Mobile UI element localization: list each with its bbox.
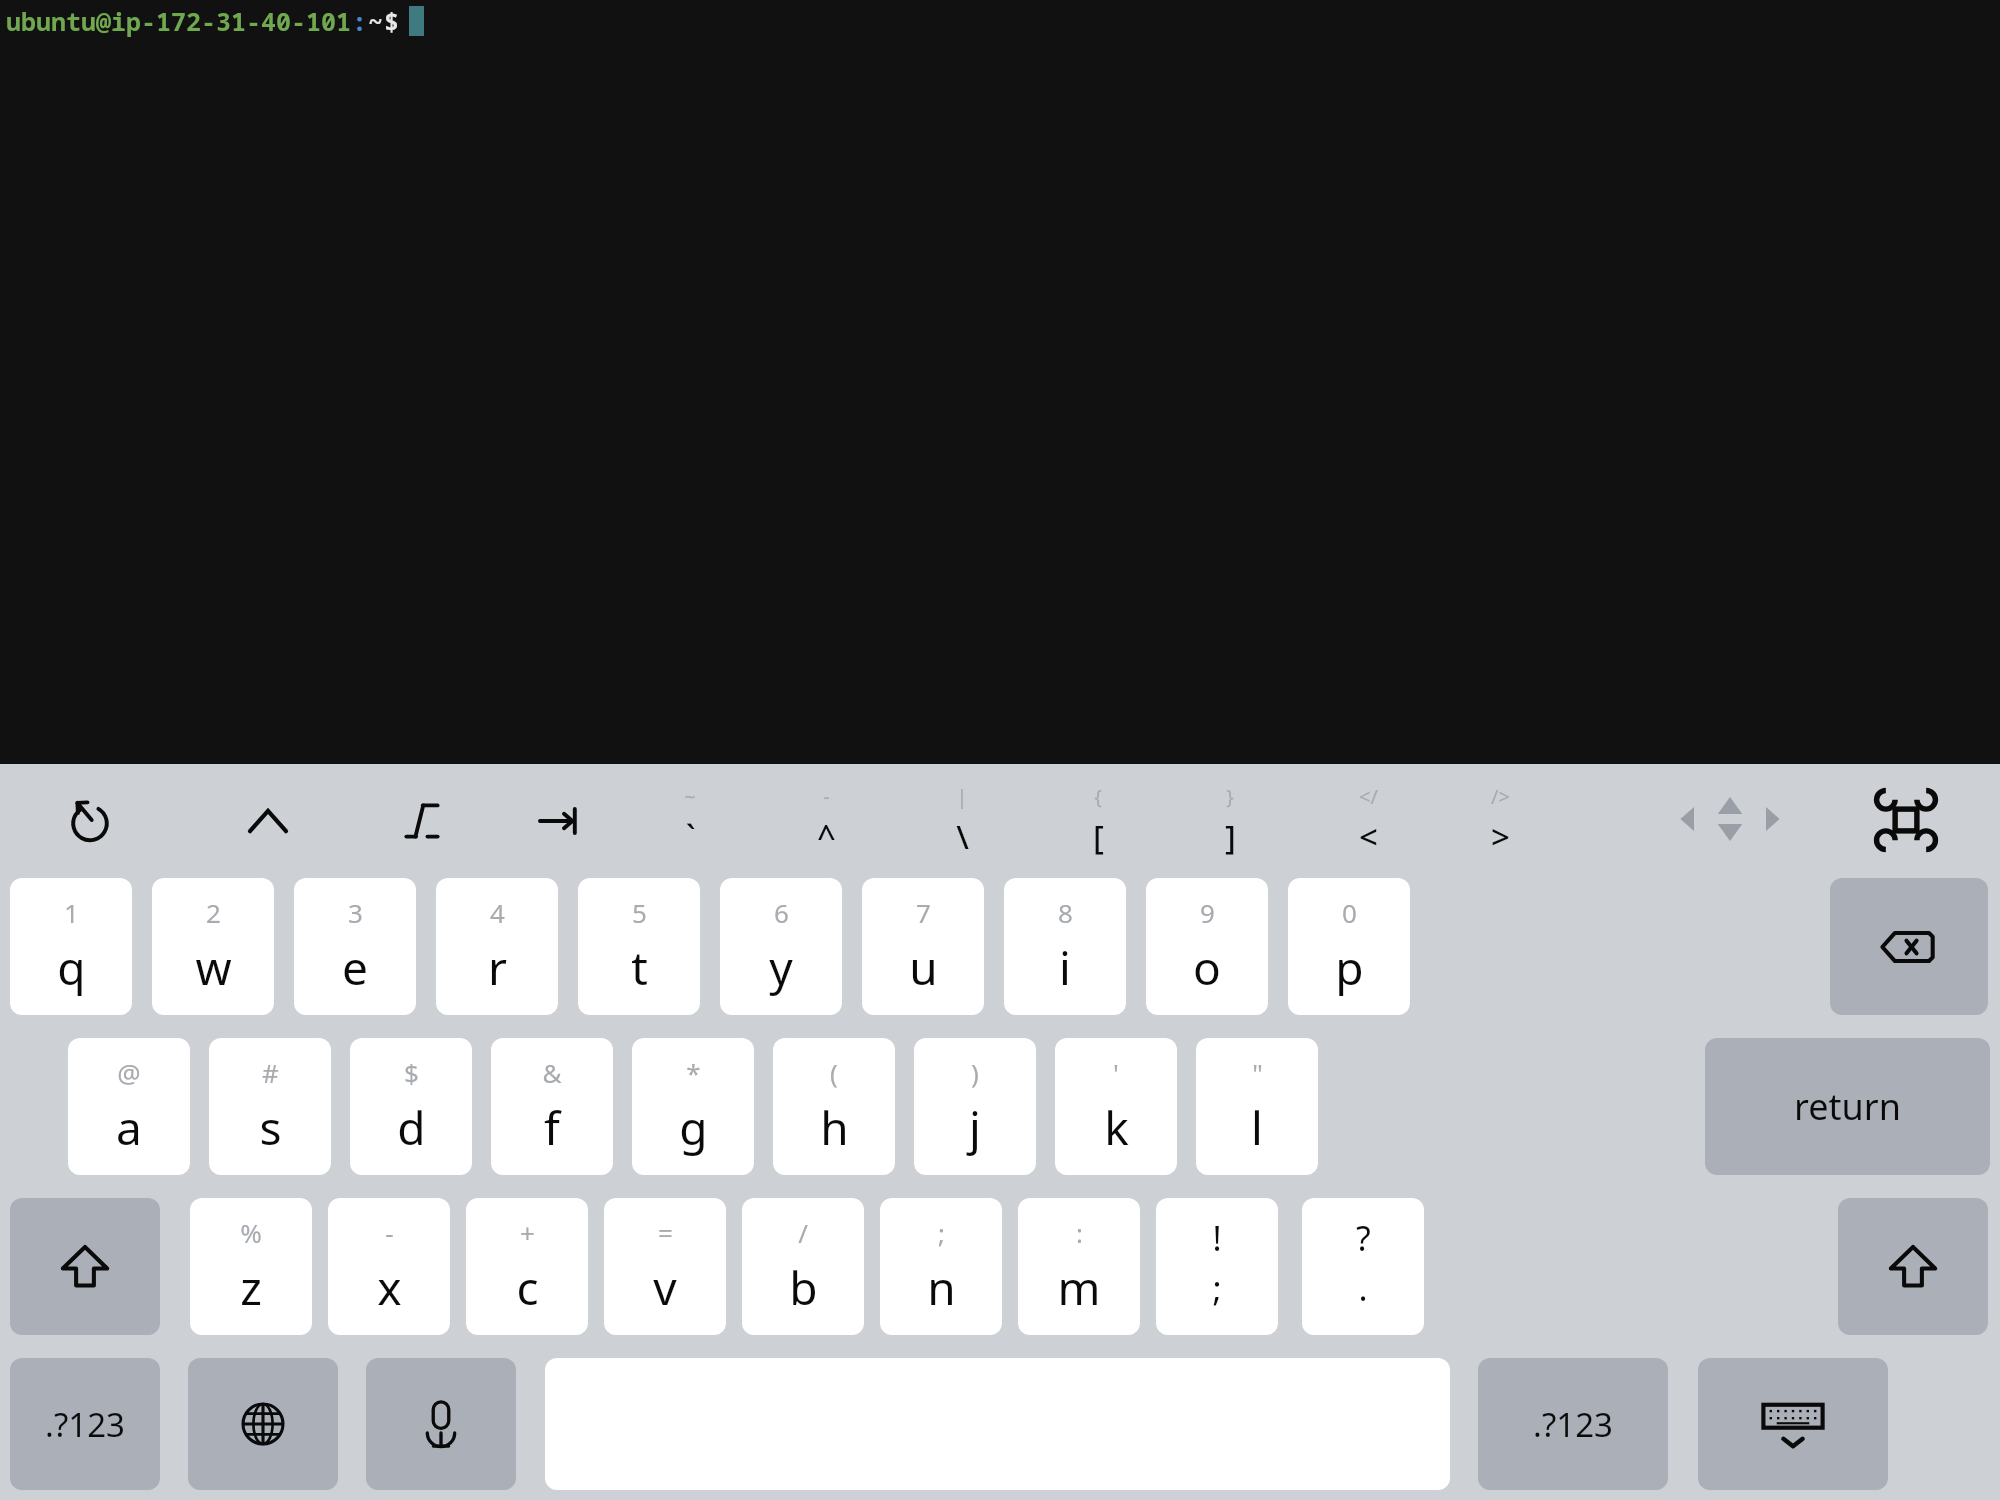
button[interactable]: (	[773, 1038, 895, 1175]
button[interactable]: 5	[578, 878, 700, 1015]
staticText: w	[195, 936, 232, 999]
button[interactable]: '	[1055, 1038, 1177, 1175]
button[interactable]: 3	[294, 878, 416, 1015]
button[interactable]: </	[1313, 764, 1423, 878]
staticText: >	[1491, 814, 1510, 859]
staticText: f	[544, 1096, 560, 1159]
staticText: )	[971, 1055, 979, 1090]
button[interactable]: 1	[10, 878, 132, 1015]
staticText: '	[1113, 1055, 1119, 1090]
staticText: ]	[1225, 814, 1236, 859]
staticText: [	[1093, 814, 1104, 859]
button[interactable]: Undo	[35, 764, 145, 878]
button[interactable]: -	[771, 764, 881, 878]
button[interactable]: +	[466, 1198, 588, 1335]
button[interactable]: $	[350, 1038, 472, 1175]
button[interactable]: .?123	[10, 1358, 160, 1490]
staticText: *	[686, 1055, 701, 1090]
staticText: 9	[1200, 895, 1215, 930]
staticText: 1	[64, 895, 79, 930]
button[interactable]: 2	[152, 878, 274, 1015]
button[interactable]: 6	[720, 878, 842, 1015]
staticText: c	[516, 1256, 539, 1319]
button[interactable]: ;	[880, 1198, 1002, 1335]
staticText: m	[1057, 1256, 1101, 1319]
staticText: 3	[348, 895, 363, 930]
button[interactable]: Backspace	[1830, 878, 1988, 1015]
button[interactable]: 0	[1288, 878, 1410, 1015]
staticText: -	[385, 1215, 394, 1250]
staticText: "	[1252, 1055, 1263, 1090]
button[interactable]: Shift	[10, 1198, 160, 1335]
staticText: q	[57, 936, 86, 999]
button[interactable]: Shift	[1838, 1198, 1988, 1335]
button[interactable]: "	[1196, 1038, 1318, 1175]
button[interactable]: #	[209, 1038, 331, 1175]
button[interactable]: Dictate	[366, 1358, 516, 1490]
staticText: |	[956, 783, 968, 810]
button[interactable]: @	[68, 1038, 190, 1175]
button[interactable]: Arrow keys	[1660, 784, 1800, 854]
button[interactable]: return	[1705, 1038, 1990, 1175]
staticText: $	[404, 1055, 419, 1090]
button[interactable]: ?	[1302, 1198, 1424, 1335]
button[interactable]: 7	[862, 878, 984, 1015]
staticText: ubuntu@ip-172-31-40-101	[6, 4, 352, 38]
staticText: z	[240, 1256, 262, 1319]
staticText: g	[679, 1096, 708, 1159]
button[interactable]: .?123	[1478, 1358, 1668, 1490]
staticText: i	[1059, 936, 1071, 999]
button[interactable]: }	[1175, 764, 1285, 878]
staticText: #	[262, 1055, 279, 1090]
button[interactable]: Hide keyboard	[1698, 1358, 1888, 1490]
staticText: y	[769, 936, 793, 999]
staticText: v	[653, 1256, 677, 1319]
button[interactable]: />	[1445, 764, 1555, 878]
button[interactable]: {	[1043, 764, 1153, 878]
button[interactable]: 4	[436, 878, 558, 1015]
button[interactable]: )	[914, 1038, 1036, 1175]
button[interactable]: &	[491, 1038, 613, 1175]
button[interactable]: %	[190, 1198, 312, 1335]
staticText: 7	[916, 895, 931, 930]
staticText: 8	[1058, 895, 1073, 930]
staticText: return	[1794, 1082, 1901, 1131]
staticText: :	[352, 4, 368, 38]
staticText: ?	[1356, 1215, 1371, 1261]
button[interactable]: *	[632, 1038, 754, 1175]
button[interactable]: !	[1156, 1198, 1278, 1335]
button[interactable]: Tab	[503, 764, 613, 878]
staticText: =	[658, 1215, 673, 1250]
button[interactable]: -	[328, 1198, 450, 1335]
staticText: ~	[684, 783, 696, 810]
staticText: &	[542, 1055, 562, 1090]
staticText: p	[1335, 936, 1364, 999]
staticText: 2	[206, 895, 221, 930]
staticText: `	[685, 814, 696, 859]
button[interactable]: Change keyboard	[188, 1358, 338, 1490]
button[interactable]: |	[907, 764, 1017, 878]
staticText: o	[1193, 936, 1221, 999]
button[interactable]: Command	[1868, 788, 1944, 852]
button[interactable]: :	[1018, 1198, 1140, 1335]
staticText: t	[631, 936, 648, 999]
staticText: s	[259, 1096, 282, 1159]
staticText: ;	[938, 1215, 945, 1250]
staticText: r	[488, 936, 507, 999]
staticText: e	[342, 936, 368, 999]
button[interactable]: Escape	[367, 764, 477, 878]
staticText: !	[1212, 1215, 1222, 1261]
staticText: 4	[490, 895, 505, 930]
staticText: :	[1076, 1215, 1083, 1250]
button[interactable]: 8	[1004, 878, 1126, 1015]
staticText: k	[1104, 1096, 1129, 1159]
staticText: ^	[817, 814, 836, 859]
button[interactable]: ~	[635, 764, 745, 878]
button[interactable]: /	[742, 1198, 864, 1335]
button[interactable]: 9	[1146, 878, 1268, 1015]
button[interactable]: =	[604, 1198, 726, 1335]
staticText: 5	[632, 895, 647, 930]
staticText: \	[956, 814, 969, 859]
button[interactable]: Control	[213, 764, 323, 878]
